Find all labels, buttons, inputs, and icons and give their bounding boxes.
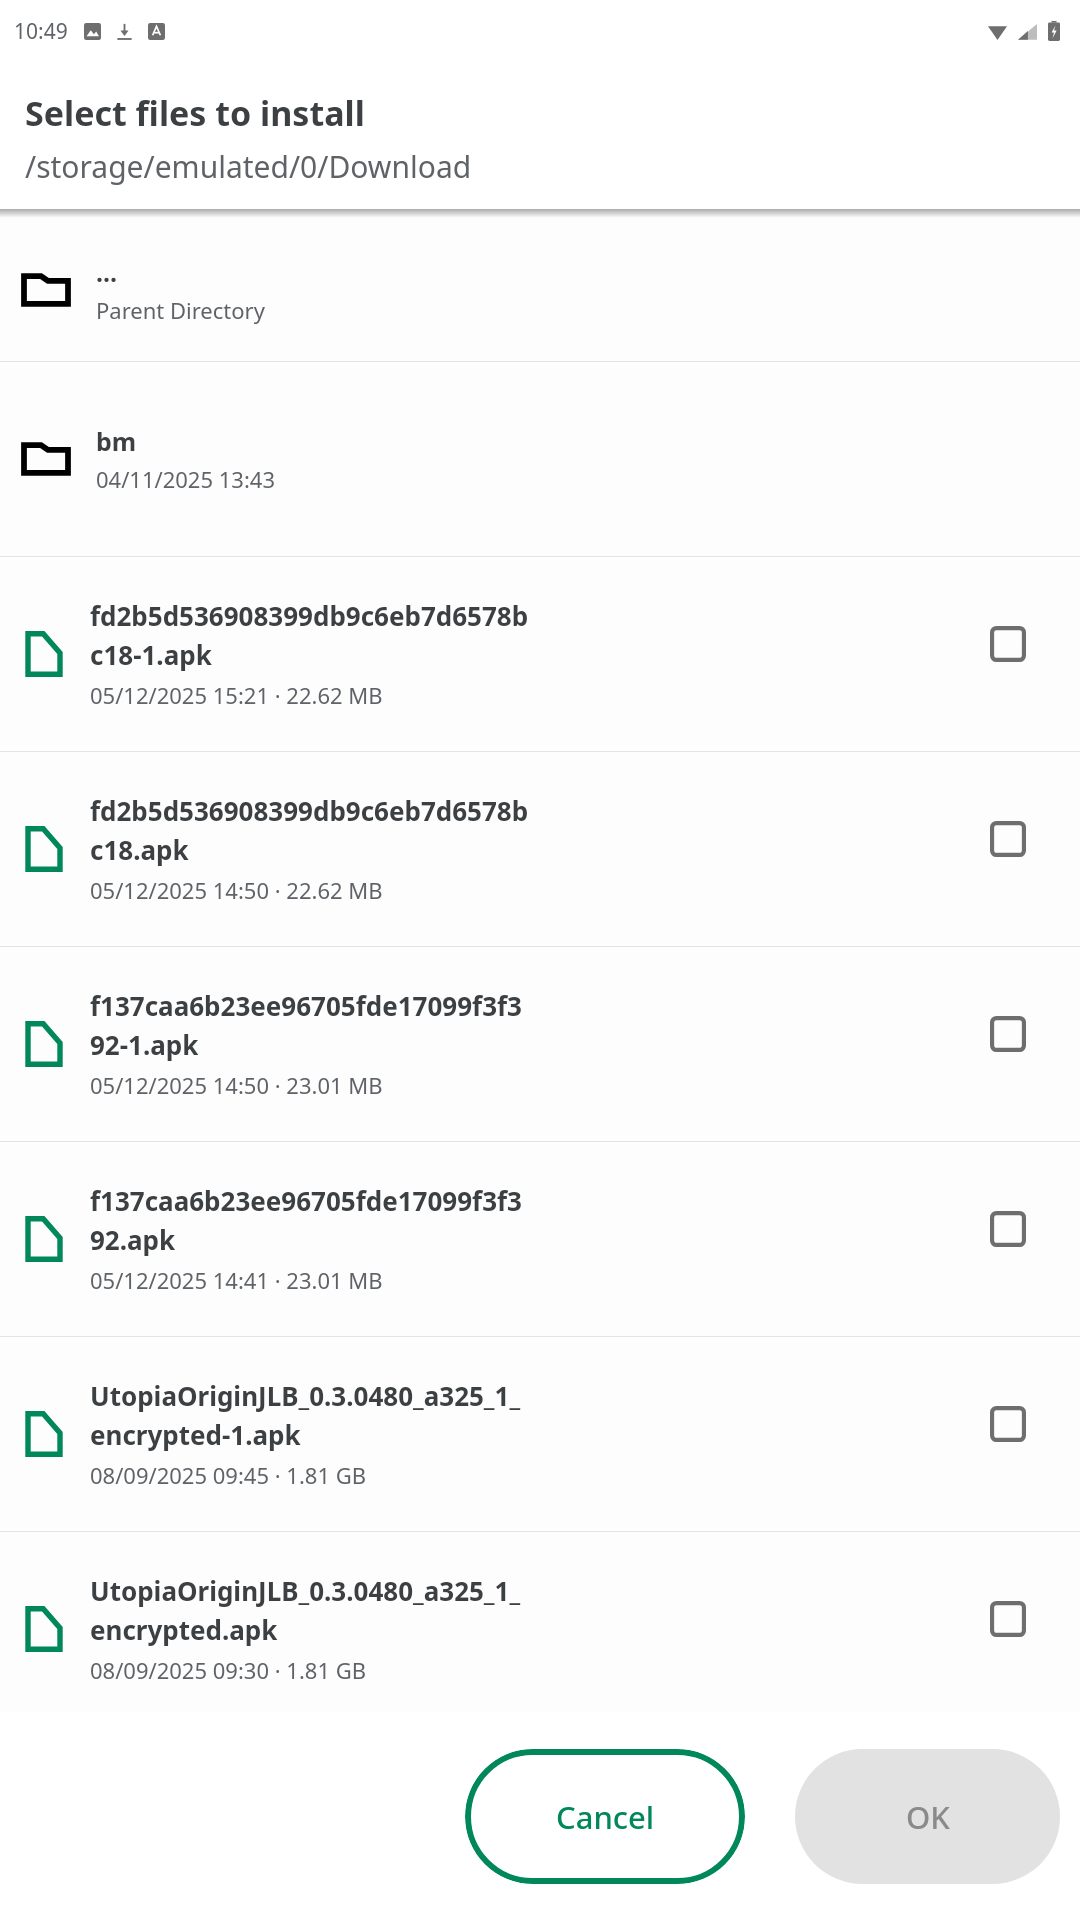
staticText: fd2b5d536908399db9c6eb7d6578b bbox=[90, 598, 529, 633]
staticText: 05/12/2025 14:50 · 23.01 MB bbox=[90, 1070, 383, 1100]
staticText: 04/11/2025 13:43 bbox=[96, 464, 275, 494]
button[interactable]: f137caa6b23ee96705fde17099f3f3 bbox=[0, 947, 1080, 1142]
staticText: 10:49 bbox=[14, 17, 68, 46]
staticText: /storage/emulated/0/Download bbox=[25, 146, 472, 187]
staticText: f137caa6b23ee96705fde17099f3f3 bbox=[90, 1183, 522, 1218]
staticText: 05/12/2025 14:41 · 23.01 MB bbox=[90, 1265, 383, 1295]
staticText: c18.apk bbox=[90, 832, 189, 867]
staticText: 05/12/2025 14:50 · 22.62 MB bbox=[90, 875, 383, 905]
staticText: Select files to install bbox=[25, 90, 365, 136]
staticText: encrypted.apk bbox=[90, 1612, 278, 1647]
button[interactable]: ... bbox=[0, 218, 1080, 362]
button[interactable]: UtopiaOriginJLB_0.3.0480_a325_1_ bbox=[0, 1532, 1080, 1727]
staticText: 05/12/2025 15:21 · 22.62 MB bbox=[90, 680, 383, 710]
staticText: 92.apk bbox=[90, 1222, 176, 1257]
button[interactable]: Select file bbox=[990, 1601, 1026, 1637]
staticText: encrypted-1.apk bbox=[90, 1417, 301, 1452]
staticText: ... bbox=[96, 255, 118, 289]
staticText: 08/09/2025 09:30 · 1.81 GB bbox=[90, 1655, 367, 1685]
staticText: 92-1.apk bbox=[90, 1027, 199, 1062]
button[interactable]: fd2b5d536908399db9c6eb7d6578b bbox=[0, 557, 1080, 752]
staticText: Parent Directory bbox=[96, 295, 265, 325]
staticText: Cancel bbox=[556, 1796, 655, 1838]
staticText: OK bbox=[906, 1796, 950, 1838]
staticText: bm bbox=[96, 424, 137, 458]
staticText: f137caa6b23ee96705fde17099f3f3 bbox=[90, 988, 522, 1023]
button[interactable]: OK bbox=[795, 1749, 1060, 1884]
staticText: fd2b5d536908399db9c6eb7d6578b bbox=[90, 793, 529, 828]
button[interactable]: Select file bbox=[990, 1406, 1026, 1442]
button[interactable]: Select file bbox=[990, 821, 1026, 857]
button[interactable]: Select file bbox=[990, 1211, 1026, 1247]
button[interactable]: fd2b5d536908399db9c6eb7d6578b bbox=[0, 752, 1080, 947]
staticText: UtopiaOriginJLB_0.3.0480_a325_1_ bbox=[90, 1378, 521, 1413]
staticText: UtopiaOriginJLB_0.3.0480_a325_1_ bbox=[90, 1573, 521, 1608]
button[interactable]: UtopiaOriginJLB_0.3.0480_a325_1_ bbox=[0, 1337, 1080, 1532]
button[interactable]: f137caa6b23ee96705fde17099f3f3 bbox=[0, 1142, 1080, 1337]
staticText: c18-1.apk bbox=[90, 637, 212, 672]
staticText: 08/09/2025 09:45 · 1.81 GB bbox=[90, 1460, 367, 1490]
button[interactable]: Cancel bbox=[465, 1749, 745, 1884]
button[interactable]: Select file bbox=[990, 626, 1026, 662]
button[interactable]: bm bbox=[0, 362, 1080, 557]
button[interactable]: Select file bbox=[990, 1016, 1026, 1052]
